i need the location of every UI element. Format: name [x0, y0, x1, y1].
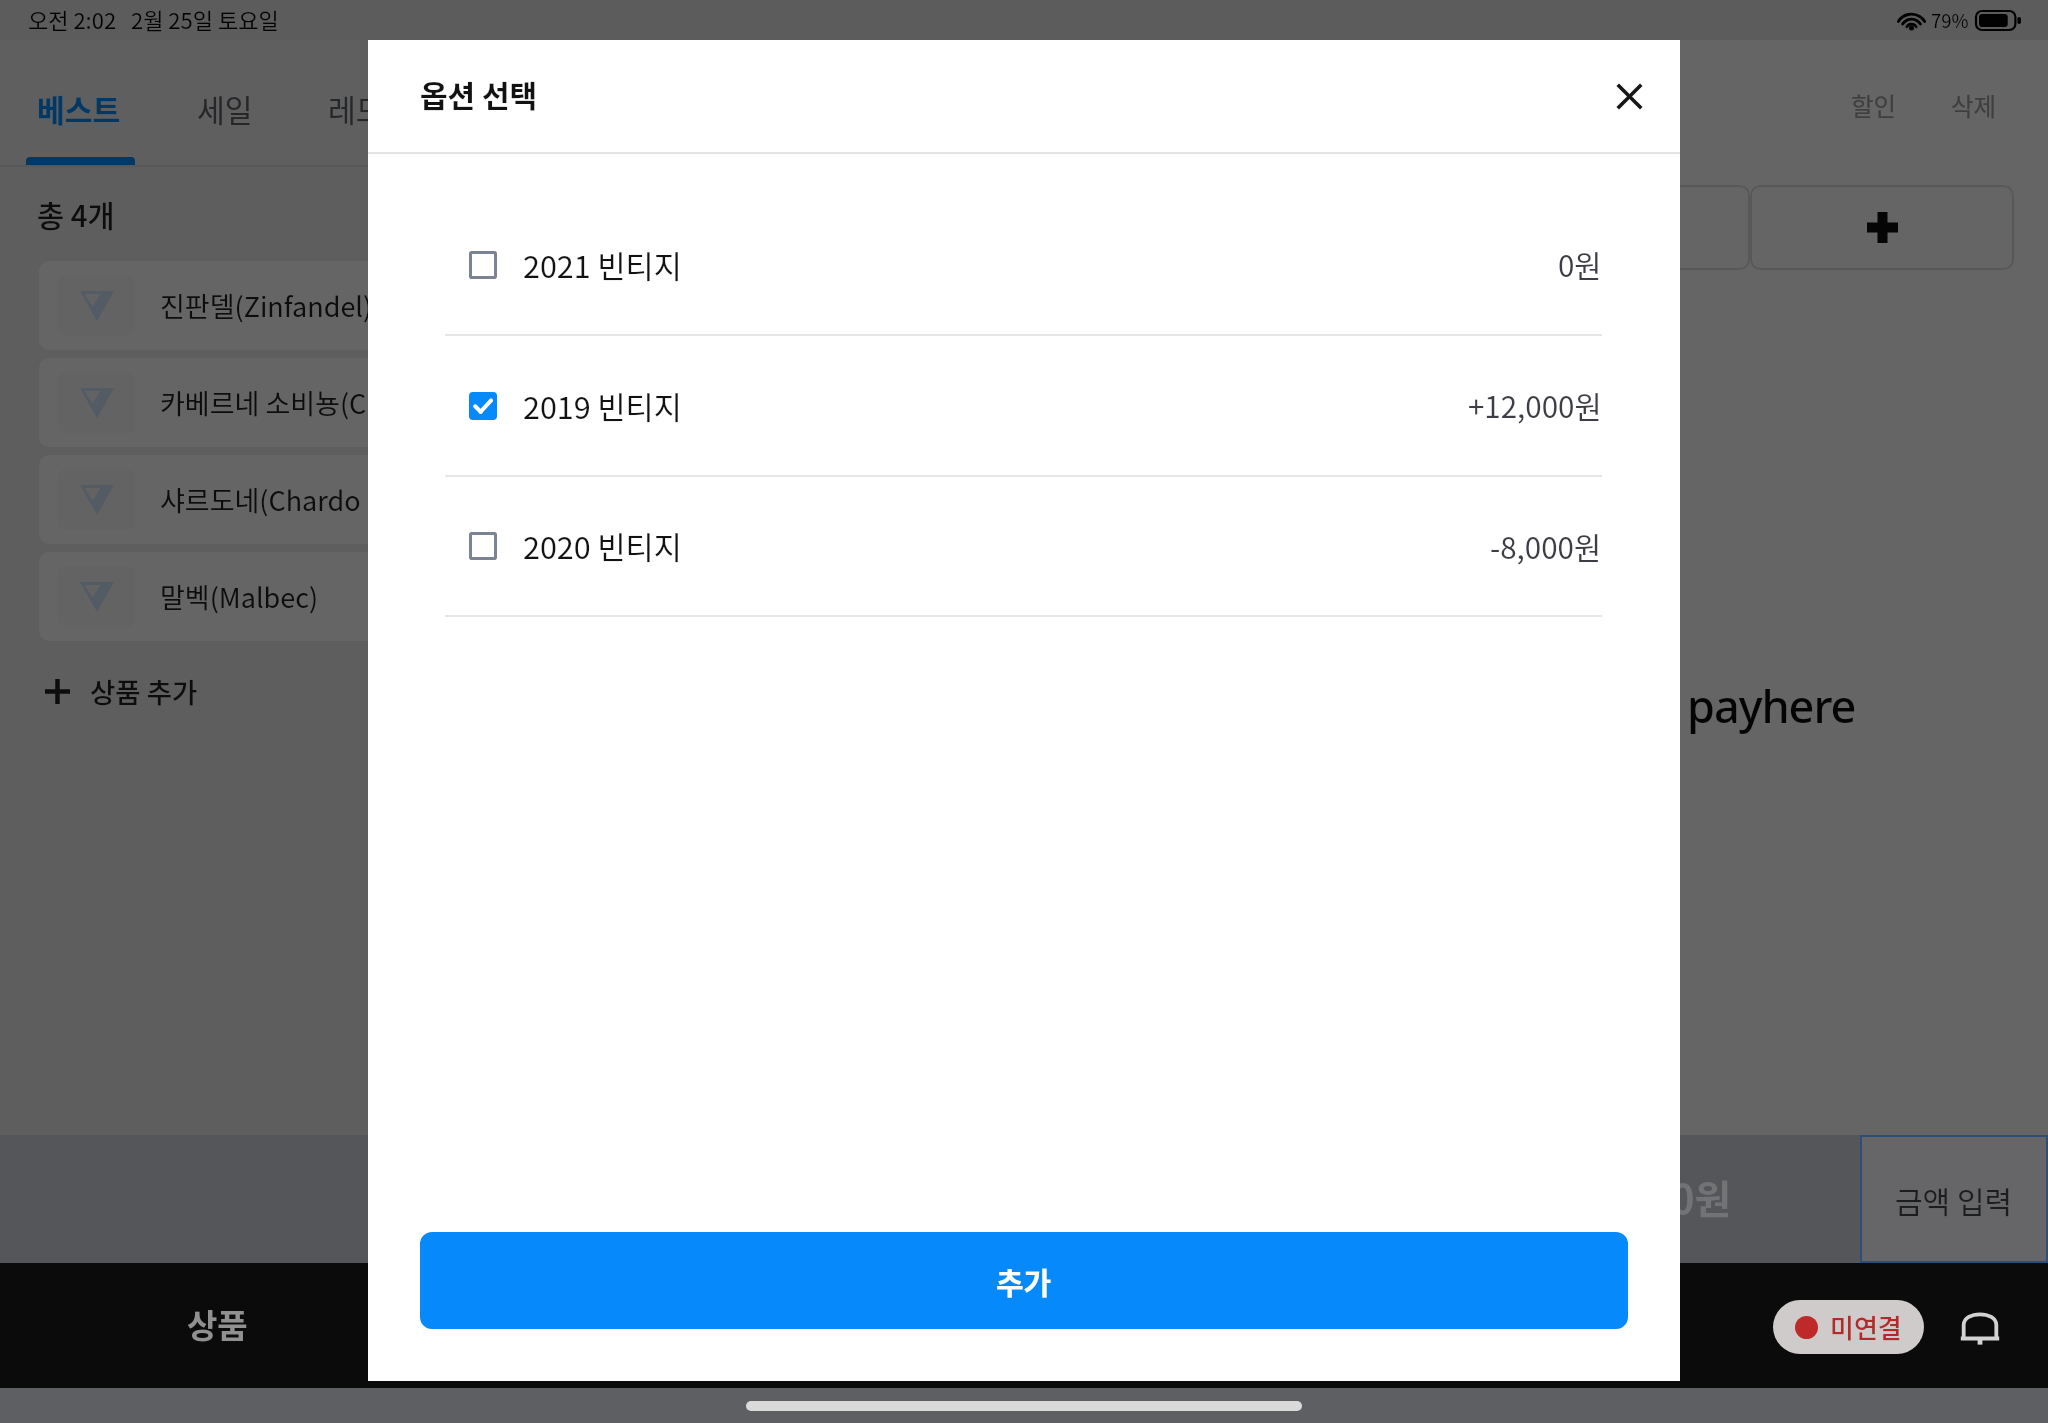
staticText: 샤르도네(Chardo	[160, 480, 361, 519]
button[interactable]: 2020 빈티지	[368, 477, 1680, 615]
staticText: 2020 빈티지	[523, 524, 682, 568]
staticText: 할인	[1851, 88, 1897, 123]
staticText: 추가	[996, 1259, 1052, 1302]
button[interactable]: 상품	[37, 1263, 397, 1388]
button[interactable]: 미연결	[1773, 1300, 1924, 1354]
staticText: 삭제	[1951, 88, 1997, 123]
staticText: 베스트	[37, 87, 121, 131]
staticText: 카베르네 소비뇽(C	[160, 383, 367, 422]
button[interactable]: 할인	[1833, 67, 1915, 144]
staticText: 말벡(Malbec)	[160, 577, 319, 616]
button[interactable]: 추가	[420, 1232, 1628, 1329]
staticText: 총 4개	[37, 193, 115, 236]
staticText: 0원	[1558, 243, 1602, 286]
button[interactable]: 샤르도네(Chardo	[39, 455, 399, 544]
staticText: 상품 추가	[90, 671, 198, 711]
button[interactable]: 2019 빈티지	[368, 336, 1680, 475]
button[interactable]: 닫기	[1594, 61, 1664, 131]
staticText: 금액 입력	[1895, 1178, 2013, 1221]
button[interactable]: 카베르네 소비뇽(C	[39, 358, 399, 447]
button[interactable]: 수량	[1550, 185, 1750, 270]
button[interactable]: 상품 추가	[45, 659, 198, 723]
button[interactable]: 추가	[1750, 185, 2014, 270]
button[interactable]: 2021 빈티지	[368, 195, 1680, 334]
staticText: 세일	[197, 87, 253, 131]
staticText: 79%	[1931, 7, 1969, 34]
button[interactable]: 삭제	[1933, 67, 2015, 144]
staticText: 오전 2:02 2월 25일 토요일	[28, 3, 279, 35]
button[interactable]: 알림	[1948, 1295, 2012, 1359]
staticText: +12,000원	[1468, 384, 1602, 427]
staticText: 상품	[187, 1300, 248, 1348]
staticText: payhere	[1687, 675, 1856, 736]
staticText: 2019 빈티지	[523, 384, 682, 428]
staticText: 레드	[328, 87, 384, 131]
staticText: -8,000원	[1490, 525, 1602, 568]
button[interactable]: 금액 입력	[1860, 1135, 2048, 1263]
button[interactable]: 진판델(Zinfandel)	[39, 261, 399, 350]
staticText: 미연결	[1830, 1308, 1902, 1346]
staticText: 2021 빈티지	[523, 243, 682, 287]
staticText: 옵션 선택	[420, 72, 538, 115]
staticText: 0원	[1671, 1168, 1732, 1226]
staticText: 진판델(Zinfandel)	[160, 286, 373, 325]
button[interactable]: 말벡(Malbec)	[39, 552, 399, 641]
